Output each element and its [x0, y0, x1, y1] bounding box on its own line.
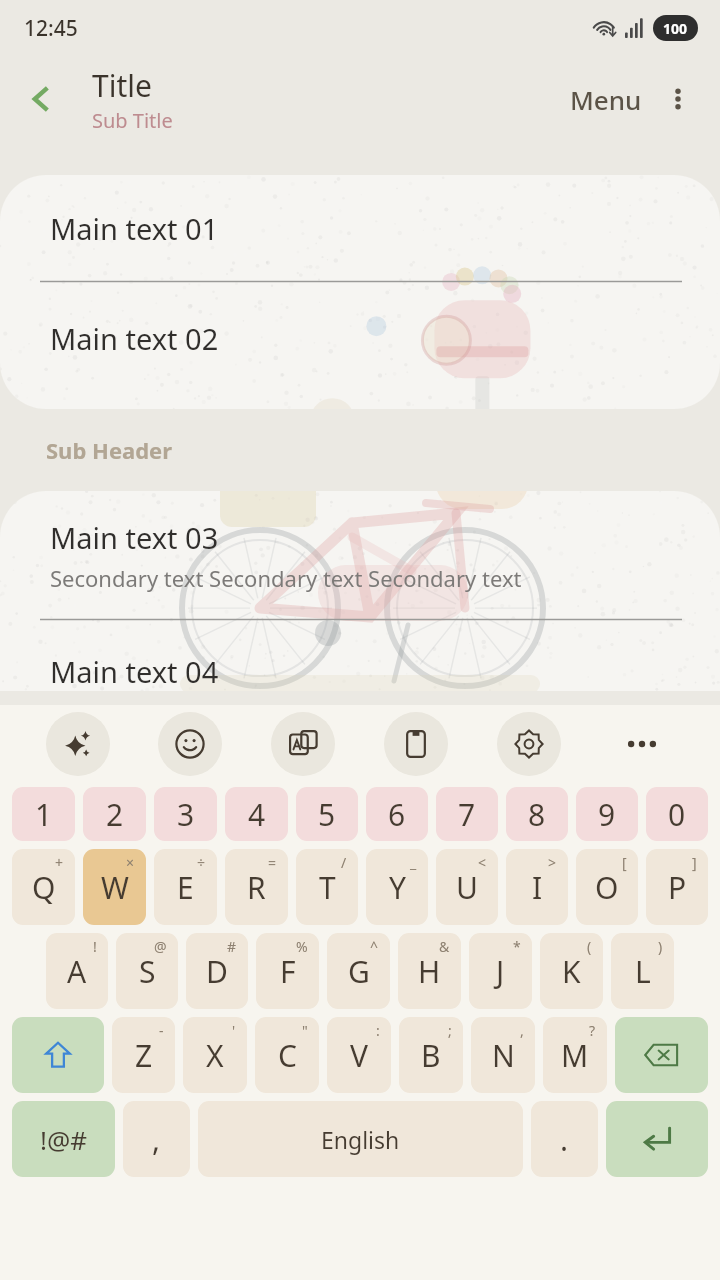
button[interactable]: 5	[296, 787, 358, 841]
staticText: W	[101, 867, 129, 908]
staticText: =	[268, 853, 277, 872]
button[interactable]: Settings	[497, 712, 561, 776]
staticText: Sub Header	[46, 435, 173, 465]
button[interactable]: Main text 03	[0, 491, 720, 619]
button[interactable]: Clipboard	[384, 712, 448, 776]
staticText: <	[478, 853, 487, 872]
button[interactable]: More	[585, 705, 698, 783]
staticText: 6	[388, 794, 406, 835]
staticText: C	[278, 1035, 297, 1076]
button[interactable]: %	[256, 933, 319, 1009]
button[interactable]: !@#	[12, 1101, 115, 1177]
button[interactable]: /	[296, 849, 358, 925]
staticText: E	[177, 867, 194, 908]
button[interactable]: [	[576, 849, 638, 925]
staticText: :	[376, 1021, 380, 1040]
button[interactable]: >	[506, 849, 568, 925]
staticText: 12:45	[24, 14, 78, 43]
button[interactable]: #	[186, 933, 248, 1009]
button[interactable]: ×	[83, 849, 146, 925]
button[interactable]: ÷	[154, 849, 217, 925]
button[interactable]: Translate	[271, 712, 335, 776]
button[interactable]: =	[225, 849, 288, 925]
staticText: M	[561, 1035, 589, 1076]
button[interactable]: )	[611, 933, 674, 1009]
staticText: @	[154, 937, 167, 956]
button[interactable]: Emoji	[158, 712, 222, 776]
staticText: F	[280, 951, 296, 992]
staticText: -	[159, 1021, 164, 1040]
button[interactable]: ;	[399, 1017, 463, 1093]
staticText: 100	[663, 19, 688, 38]
button[interactable]: @	[116, 933, 178, 1009]
button[interactable]: Main text 02	[0, 283, 720, 409]
button[interactable]: English	[198, 1101, 523, 1177]
staticText: 5	[318, 794, 336, 835]
button[interactable]: 0	[646, 787, 708, 841]
staticText: !@#	[40, 1122, 88, 1157]
staticText: D	[206, 951, 228, 992]
staticText: G	[348, 951, 370, 992]
staticText: '	[232, 1021, 236, 1040]
button[interactable]: '	[183, 1017, 247, 1093]
staticText: Main text 02	[50, 319, 219, 358]
button[interactable]: .	[531, 1101, 598, 1177]
staticText: 2	[106, 794, 124, 835]
staticText: ]	[692, 853, 697, 872]
staticText: P	[668, 867, 687, 908]
staticText: ^	[370, 937, 379, 956]
button[interactable]: ,	[123, 1101, 190, 1177]
button[interactable]: +	[12, 849, 75, 925]
button[interactable]: Backspace	[615, 1017, 708, 1093]
button[interactable]: 3	[154, 787, 217, 841]
button[interactable]: 1	[12, 787, 75, 841]
staticText: A	[67, 951, 87, 992]
button[interactable]: Shift	[12, 1017, 104, 1093]
button[interactable]: More options	[650, 71, 706, 127]
button[interactable]: ,	[471, 1017, 535, 1093]
staticText: /	[341, 853, 347, 872]
button[interactable]: Menu	[562, 72, 650, 127]
button[interactable]: ?	[543, 1017, 607, 1093]
staticText: Main text 01	[50, 209, 219, 248]
button[interactable]: ^	[327, 933, 390, 1009]
staticText: K	[562, 951, 581, 992]
button[interactable]: :	[327, 1017, 391, 1093]
button[interactable]: 7	[436, 787, 498, 841]
button[interactable]: <	[436, 849, 498, 925]
button[interactable]: &	[398, 933, 461, 1009]
button[interactable]: -	[112, 1017, 175, 1093]
button[interactable]: _	[366, 849, 428, 925]
staticText: .	[560, 1119, 569, 1160]
staticText: 3	[177, 794, 195, 835]
staticText: Sub Title	[92, 107, 173, 134]
button[interactable]: 2	[83, 787, 146, 841]
staticText: ×	[126, 853, 135, 872]
staticText: Title	[92, 65, 152, 106]
button[interactable]: (	[540, 933, 603, 1009]
button[interactable]: Title	[92, 65, 173, 134]
button[interactable]: !	[46, 933, 108, 1009]
staticText: I	[532, 867, 543, 908]
button[interactable]: Main text 04	[0, 621, 720, 691]
button[interactable]: 4	[225, 787, 288, 841]
button[interactable]: ]	[646, 849, 708, 925]
button[interactable]: 8	[506, 787, 568, 841]
button[interactable]: 9	[576, 787, 638, 841]
staticText: Q	[32, 867, 56, 908]
staticText: &	[439, 937, 450, 956]
button[interactable]: *	[469, 933, 532, 1009]
staticText: Menu	[570, 82, 642, 117]
staticText: R	[247, 867, 266, 908]
button[interactable]: AI assist	[46, 712, 110, 776]
button[interactable]: Enter	[606, 1101, 708, 1177]
button[interactable]: Main text 01	[0, 175, 720, 281]
staticText: 9	[598, 794, 616, 835]
button[interactable]: Back	[12, 70, 70, 128]
button[interactable]: "	[255, 1017, 319, 1093]
staticText: %	[296, 937, 308, 956]
button[interactable]: 6	[366, 787, 428, 841]
staticText: S	[139, 951, 156, 992]
staticText: J	[496, 951, 505, 992]
staticText: ,	[152, 1119, 161, 1160]
